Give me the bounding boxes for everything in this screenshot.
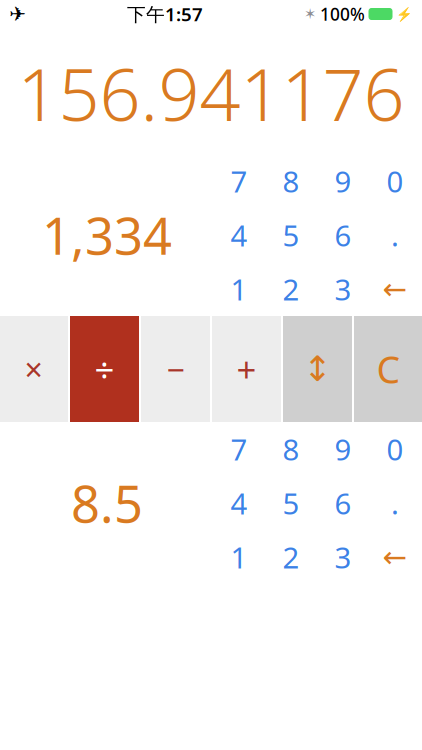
button[interactable]: 1 — [213, 530, 265, 584]
staticText: 3 — [334, 269, 351, 308]
button[interactable]: Add — [212, 316, 281, 422]
button[interactable]: . — [369, 208, 421, 262]
staticText: C — [376, 344, 400, 394]
staticText: ✈ — [9, 3, 26, 25]
staticText: × — [24, 348, 42, 390]
staticText: 156.941176 — [17, 45, 404, 141]
button[interactable]: Subtract — [141, 316, 210, 422]
button[interactable]: 9 — [317, 154, 369, 208]
button[interactable]: 8 — [265, 422, 317, 476]
button[interactable]: 1 — [213, 262, 265, 316]
button[interactable]: Divide — [70, 316, 139, 422]
staticText: 4 — [230, 483, 247, 522]
button[interactable]: 9 — [317, 422, 369, 476]
staticText: ↕ — [303, 349, 332, 389]
staticText: 9 — [334, 429, 351, 468]
button[interactable]: Clear — [354, 316, 422, 422]
staticText: 1 — [230, 537, 247, 576]
button[interactable]: 3 — [317, 262, 369, 316]
staticText: 8 — [282, 429, 299, 468]
button[interactable]: 0 — [369, 422, 421, 476]
button[interactable]: 7 — [213, 154, 265, 208]
staticText: ← — [382, 540, 407, 574]
staticText: 5 — [282, 483, 299, 522]
staticText: 7 — [230, 161, 247, 200]
button[interactable]: 0 — [369, 154, 421, 208]
staticText: 1,334 — [42, 201, 172, 269]
button[interactable]: ← — [369, 530, 421, 584]
staticText: 9 — [334, 161, 351, 200]
button[interactable]: 2 — [265, 530, 317, 584]
staticText: 8.5 — [71, 469, 143, 537]
staticText: + — [236, 346, 256, 392]
staticText: 6 — [334, 215, 351, 254]
staticText: − — [166, 348, 184, 390]
button[interactable]: 2 — [265, 262, 317, 316]
staticText: 1 — [230, 269, 247, 308]
button[interactable]: 7 — [213, 422, 265, 476]
staticText: 5 — [282, 215, 299, 254]
button[interactable]: . — [369, 476, 421, 530]
staticText: 7 — [230, 429, 247, 468]
button[interactable]: Swap operands — [283, 316, 352, 422]
button[interactable]: 5 — [265, 476, 317, 530]
staticText: 8 — [282, 161, 299, 200]
staticText: 6 — [334, 483, 351, 522]
staticText: 2 — [282, 269, 299, 308]
staticText: 3 — [334, 537, 351, 576]
staticText: . — [391, 215, 399, 254]
button[interactable]: ← — [369, 262, 421, 316]
staticText: 0 — [386, 429, 403, 468]
staticText: . — [391, 483, 399, 522]
staticText: ← — [382, 272, 407, 306]
staticText: ÷ — [94, 346, 114, 392]
button[interactable]: Multiply — [0, 316, 68, 422]
button[interactable]: 6 — [317, 208, 369, 262]
staticText: 下午1:57 — [127, 2, 203, 26]
button[interactable]: 8 — [265, 154, 317, 208]
button[interactable]: 5 — [265, 208, 317, 262]
staticText: ✶ — [304, 6, 316, 22]
staticText: ⚡ — [396, 6, 413, 22]
staticText: 4 — [230, 215, 247, 254]
button[interactable]: 4 — [213, 476, 265, 530]
button[interactable]: 6 — [317, 476, 369, 530]
button[interactable]: 3 — [317, 530, 369, 584]
staticText: 2 — [282, 537, 299, 576]
staticText: 0 — [386, 161, 403, 200]
button[interactable]: 4 — [213, 208, 265, 262]
staticText: 100% — [320, 2, 365, 25]
